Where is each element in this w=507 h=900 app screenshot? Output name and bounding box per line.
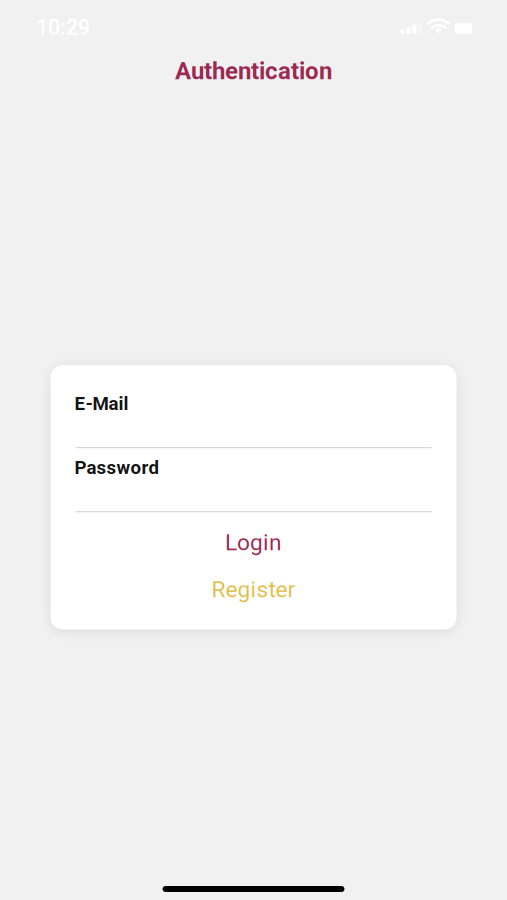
button[interactable]: Login <box>50 512 456 567</box>
button[interactable]: E-Mail <box>50 365 456 448</box>
staticText: E-Mail <box>74 393 128 414</box>
staticText: Register <box>211 576 295 603</box>
staticText: 10:29 <box>36 15 90 40</box>
staticText: Authentication <box>175 57 332 85</box>
staticText: Login <box>225 529 282 556</box>
staticText: Password <box>74 457 159 479</box>
button[interactable]: Password <box>50 448 456 512</box>
button[interactable]: Register <box>50 567 456 629</box>
